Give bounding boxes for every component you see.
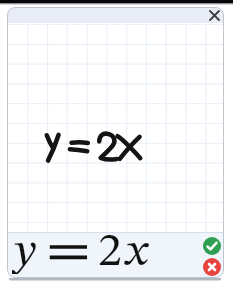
staticText: 𝑦 bbox=[12, 228, 37, 274]
button[interactable] bbox=[7, 23, 224, 232]
button[interactable] bbox=[203, 258, 221, 276]
button[interactable] bbox=[209, 10, 220, 21]
button[interactable] bbox=[7, 7, 224, 23]
staticText: 2 bbox=[98, 228, 122, 274]
staticText: 𝑥 bbox=[123, 228, 150, 274]
button[interactable] bbox=[203, 237, 221, 255]
